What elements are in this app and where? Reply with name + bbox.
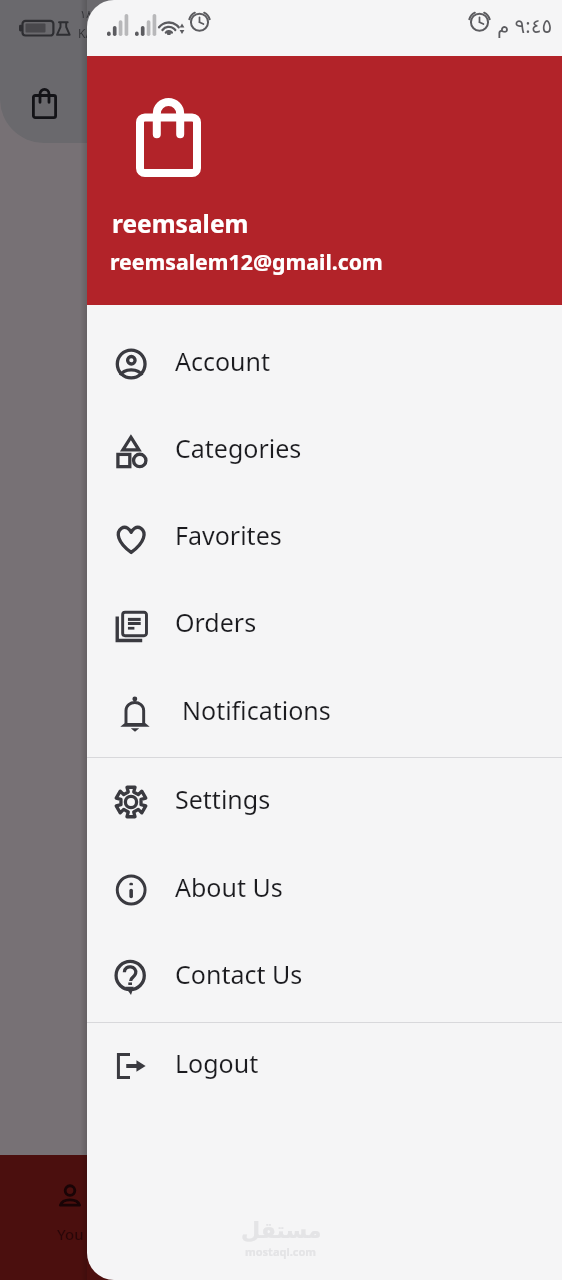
staticText: Contact Us [175, 957, 303, 991]
button[interactable]: Contact Us [87, 933, 562, 1020]
button[interactable]: About Us [87, 846, 562, 933]
button[interactable]: You [46, 1183, 94, 1244]
staticText: K/s [78, 25, 96, 41]
staticText: Account [175, 344, 271, 378]
button[interactable]: Favorites [87, 494, 562, 581]
staticText: mostaql.com [245, 1244, 317, 1259]
staticText: Favorites [175, 518, 282, 552]
staticText: Logout [175, 1046, 259, 1080]
staticText: Categories [175, 431, 302, 465]
staticText: مستقل [241, 1218, 322, 1244]
button[interactable]: Categories [87, 407, 562, 494]
button[interactable]: Shop [20, 79, 68, 127]
staticText: reemsalem12@gmail.com [110, 247, 383, 276]
staticText: ٩:٤٥ م [497, 12, 553, 39]
staticText: About Us [175, 870, 283, 904]
staticText: Orders [175, 605, 257, 639]
button[interactable]: Settings [87, 758, 562, 845]
staticText: Settings [175, 782, 271, 816]
button[interactable]: Orders [87, 581, 562, 668]
staticText: reemsalem [112, 207, 249, 240]
staticText: ١٨ [80, 8, 92, 21]
button[interactable]: Logout [87, 1022, 562, 1109]
button[interactable]: Account [87, 320, 562, 407]
button[interactable]: Notifications [87, 669, 562, 756]
staticText: You [57, 1224, 84, 1244]
staticText: Notifications [182, 693, 331, 727]
